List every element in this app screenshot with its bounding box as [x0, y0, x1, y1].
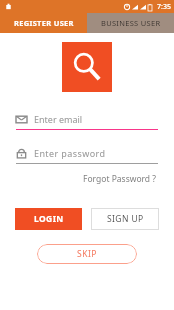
staticText: SIGN UP: [107, 213, 144, 225]
button[interactable]: Email: [16, 113, 158, 130]
staticText: 7:35: [157, 2, 171, 12]
staticText: LOGIN: [34, 213, 64, 225]
staticText: REGISTER USER: [14, 18, 74, 28]
staticText: Enter password: [34, 147, 106, 159]
staticText: Forgot Password ?: [83, 173, 156, 185]
other: Email: [16, 114, 27, 125]
button[interactable]: LOGIN: [15, 208, 82, 230]
button[interactable]: BUSINESS USER: [87, 13, 174, 33]
button[interactable]: Password: [16, 147, 158, 164]
button[interactable]: SKIP: [37, 244, 137, 264]
other: Password: [16, 148, 27, 159]
staticText: Enter email: [34, 113, 83, 125]
staticText: SKIP: [77, 248, 97, 260]
button[interactable]: SIGN UP: [91, 208, 159, 230]
staticText: BUSINESS USER: [101, 18, 161, 28]
button[interactable]: REGISTER USER: [0, 13, 87, 33]
button[interactable]: Forgot Password ?: [81, 171, 158, 187]
